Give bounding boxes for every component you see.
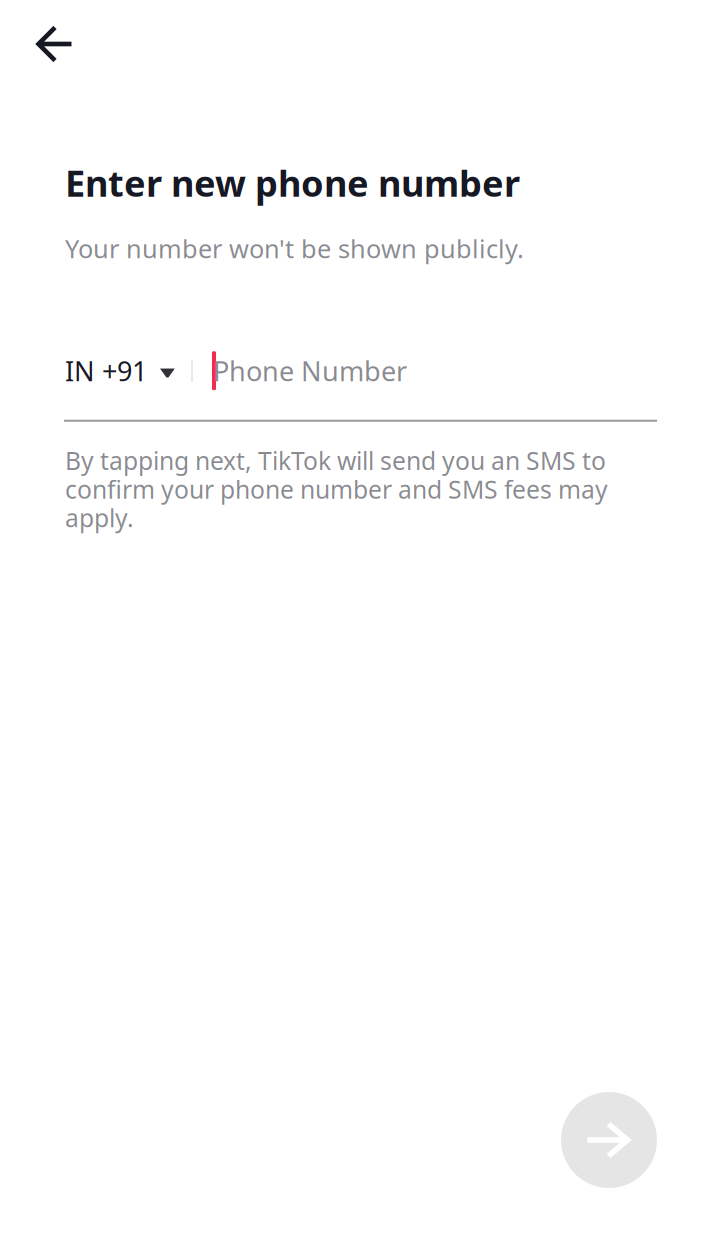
staticText: Phone Number xyxy=(213,352,407,389)
button[interactable]: Phone Number xyxy=(212,345,658,397)
staticText: Your number won't be shown publicly. xyxy=(65,231,524,266)
staticText: Enter new phone number xyxy=(65,158,520,207)
staticText: By tapping next, TikTok will send you an… xyxy=(65,444,608,534)
staticText: IN +91 xyxy=(65,352,147,389)
button[interactable]: IN +91 xyxy=(65,345,175,397)
button[interactable]: Next xyxy=(561,1092,657,1188)
button[interactable]: Back xyxy=(20,11,88,77)
